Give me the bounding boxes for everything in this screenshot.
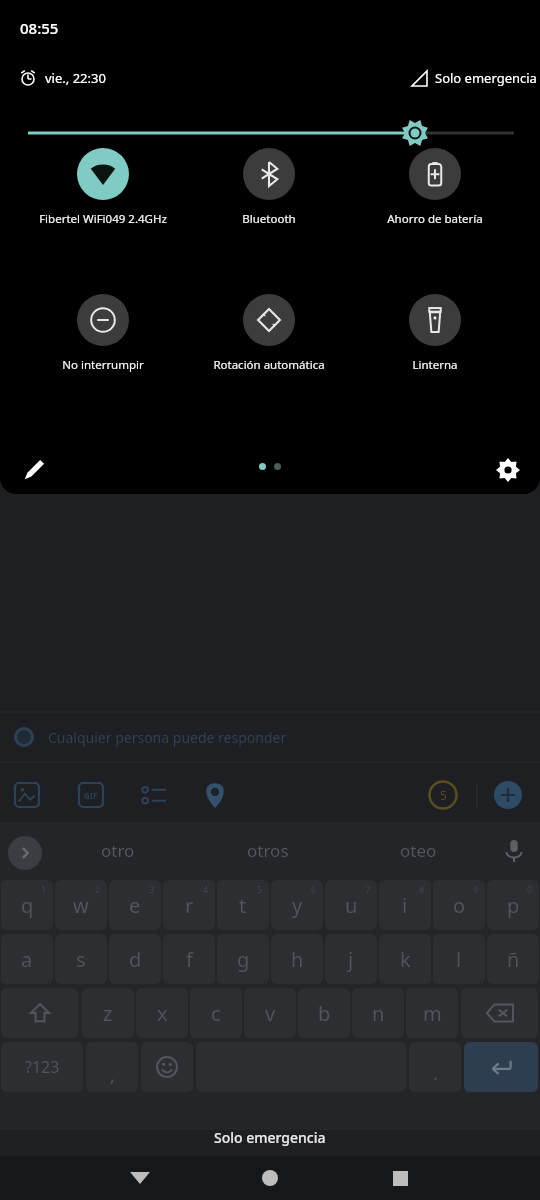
button[interactable]: Expand toolbar (8, 836, 42, 870)
button[interactable]: d (109, 934, 161, 984)
button[interactable]: Voice input (503, 840, 525, 862)
button[interactable]: a (1, 934, 53, 984)
button[interactable]: No interrumpir (28, 294, 178, 386)
button[interactable]: h (271, 934, 323, 984)
button[interactable]: s (55, 934, 107, 984)
button[interactable]: q (1, 880, 53, 930)
button[interactable]: Shift (1, 988, 78, 1038)
button[interactable]: otros (213, 830, 323, 870)
staticText: c (211, 1000, 221, 1027)
button[interactable]: Character counter (428, 780, 458, 810)
staticText: f (186, 946, 193, 973)
button[interactable]: Recent apps (370, 1156, 430, 1200)
staticText: b (318, 1000, 331, 1027)
button[interactable]: Fibertel WiFi049 2.4GHz (28, 148, 178, 240)
button[interactable]: Linterna (360, 294, 510, 386)
staticText: oteo (400, 839, 437, 862)
button[interactable]: l (433, 934, 485, 984)
button[interactable]: v (244, 988, 296, 1038)
button[interactable]: k (379, 934, 431, 984)
button[interactable]: b (298, 988, 350, 1038)
button[interactable]: r (163, 880, 215, 930)
button[interactable]: Rotación automática (194, 294, 344, 386)
button[interactable]: i (379, 880, 431, 930)
button[interactable] (0, 112, 540, 154)
button[interactable]: p (487, 880, 539, 930)
staticText: 4 (203, 883, 209, 895)
staticText: 0 (527, 883, 533, 895)
staticText: , (110, 1063, 115, 1088)
staticText: h (291, 946, 304, 973)
staticText: Fibertel WiFi049 2.4GHz (39, 211, 167, 227)
staticText: GIF (84, 790, 98, 801)
button[interactable]: More options (494, 781, 522, 809)
staticText: Solo emergencia (214, 1128, 326, 1147)
button[interactable]: x (136, 988, 188, 1038)
button[interactable]: Home (240, 1156, 300, 1200)
staticText: 8 (419, 883, 425, 895)
button[interactable]: m (406, 988, 458, 1038)
staticText: 7 (365, 883, 371, 895)
button[interactable]: w (55, 880, 107, 930)
staticText: 9 (473, 883, 479, 895)
staticText: 5 (440, 787, 447, 803)
staticText: Rotación automática (213, 357, 325, 373)
button[interactable]: Enter (464, 1042, 538, 1092)
staticText: 1 (41, 883, 47, 895)
button[interactable]: Send location (202, 782, 228, 808)
staticText: k (400, 946, 411, 973)
button[interactable]: f (163, 934, 215, 984)
staticText: e (129, 892, 141, 919)
staticText: v (265, 1000, 276, 1027)
button[interactable]: Insert image (14, 782, 40, 808)
button[interactable]: u (325, 880, 377, 930)
button[interactable]: t (217, 880, 269, 930)
staticText: 5 (257, 883, 263, 895)
staticText: n (372, 1000, 385, 1027)
staticText: z (103, 1000, 113, 1027)
button[interactable]: Emoji (141, 1042, 193, 1092)
staticText: i (402, 892, 408, 919)
button[interactable]: ñ (487, 934, 539, 984)
staticText: 08:55 (20, 18, 59, 38)
staticText: 3 (149, 883, 155, 895)
button[interactable]: o (433, 880, 485, 930)
staticText: No interrumpir (62, 357, 144, 373)
button[interactable]: Back (110, 1156, 170, 1200)
button[interactable]: c (190, 988, 242, 1038)
button[interactable]: Insert GIF (78, 782, 104, 808)
staticText: g (237, 946, 250, 973)
staticText: u (345, 892, 358, 919)
button[interactable]: j (325, 934, 377, 984)
staticText: otros (247, 839, 289, 862)
staticText: l (456, 946, 462, 973)
button[interactable]: g (217, 934, 269, 984)
button[interactable]: otro (63, 830, 173, 870)
button[interactable]: z (82, 988, 134, 1038)
button[interactable]: n (352, 988, 404, 1038)
button[interactable]: Settings (488, 450, 528, 490)
button[interactable]: Ahorro de batería (360, 148, 510, 240)
staticText: a (21, 946, 33, 973)
staticText: 6 (311, 883, 317, 895)
staticText: Solo emergencia (435, 69, 537, 87)
staticText: p (507, 892, 520, 919)
staticText: w (73, 892, 89, 919)
staticText: q (21, 892, 34, 919)
staticText: d (129, 946, 142, 973)
button[interactable]: oteo (363, 830, 473, 870)
button[interactable]: Edit tiles (14, 450, 54, 490)
staticText: j (348, 946, 354, 973)
button[interactable]: e (109, 880, 161, 930)
button[interactable]: ?123 (1, 1042, 83, 1092)
staticText: Cualquier persona puede responder (48, 728, 287, 747)
button[interactable]: Bluetooth (194, 148, 344, 240)
staticText: ñ (507, 946, 520, 973)
button[interactable]: Insert list (140, 782, 166, 808)
button[interactable]: y (271, 880, 323, 930)
staticText: otro (101, 839, 135, 862)
button[interactable]: Backspace (461, 988, 538, 1038)
